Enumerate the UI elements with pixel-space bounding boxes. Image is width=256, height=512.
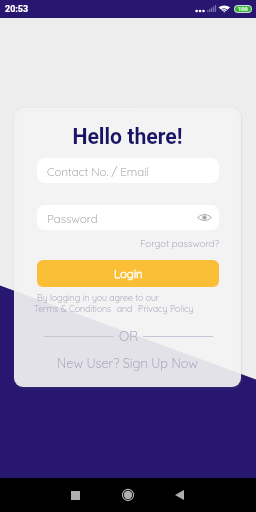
staticText: 20:53 [5, 4, 29, 15]
button[interactable]: Password [37, 205, 219, 230]
staticText: 100 [238, 6, 248, 12]
other: Show password [197, 210, 212, 225]
staticText: Login [114, 267, 143, 281]
button[interactable]: Terms & Conditions [34, 303, 112, 314]
staticText: Forgot password? [140, 237, 220, 249]
button[interactable]: Privacy Policy [138, 303, 194, 314]
button[interactable]: Contact No. / Email [37, 158, 219, 183]
button[interactable]: Back [164, 478, 195, 512]
staticText: New User? Sign Up Now [57, 355, 198, 371]
button[interactable]: Login [37, 260, 219, 287]
staticText: OR [119, 328, 138, 344]
staticText: and [112, 303, 138, 314]
button[interactable]: Recents [60, 478, 91, 512]
button[interactable]: New User? Sign Up Now [14, 352, 241, 374]
staticText: Contact No. / Email [47, 164, 150, 178]
staticText: Hello there! [14, 124, 241, 149]
button[interactable]: Home [112, 478, 143, 512]
button[interactable]: Forgot password? [101, 237, 220, 249]
staticText: By logging in you agree to our [37, 292, 160, 303]
staticText: Password [47, 211, 98, 225]
